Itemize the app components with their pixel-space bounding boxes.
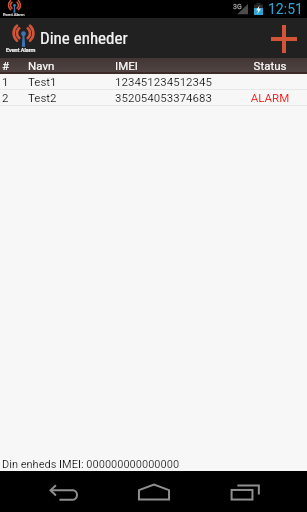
button[interactable]: 2 — [0, 90, 307, 105]
staticText: 352054053374683 — [115, 91, 233, 104]
staticText: Event Alarm — [6, 47, 36, 53]
staticText: Test2 — [28, 91, 115, 104]
button[interactable]: Home — [124, 471, 184, 512]
staticText: 12:51 — [268, 1, 303, 17]
staticText: # — [2, 59, 28, 72]
staticText: Dine enheder — [40, 28, 128, 48]
staticText: 2 — [2, 91, 28, 104]
staticText: Din enheds IMEI: 000000000000000 — [2, 458, 180, 471]
staticText: 1 — [2, 75, 28, 88]
button[interactable]: Back — [33, 471, 93, 512]
staticText: Event Alarm — [3, 12, 25, 17]
staticText: Test1 — [28, 75, 115, 88]
staticText: IMEI — [115, 59, 233, 72]
staticText: Navn — [28, 59, 115, 72]
button[interactable]: Add device — [263, 18, 307, 58]
staticText: 123451234512345 — [115, 75, 233, 88]
staticText: 3G — [233, 3, 242, 11]
staticText: ALARM — [233, 91, 307, 104]
staticText: Status — [233, 59, 307, 72]
button[interactable]: Recents — [215, 471, 275, 512]
button[interactable]: 1 — [0, 74, 307, 89]
